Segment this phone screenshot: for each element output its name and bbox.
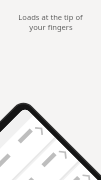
staticText: your fingers — [29, 22, 73, 32]
button[interactable]: Loads at the tip of your fingers — [10, 12, 91, 32]
staticText: Loads at the tip of — [18, 12, 83, 22]
